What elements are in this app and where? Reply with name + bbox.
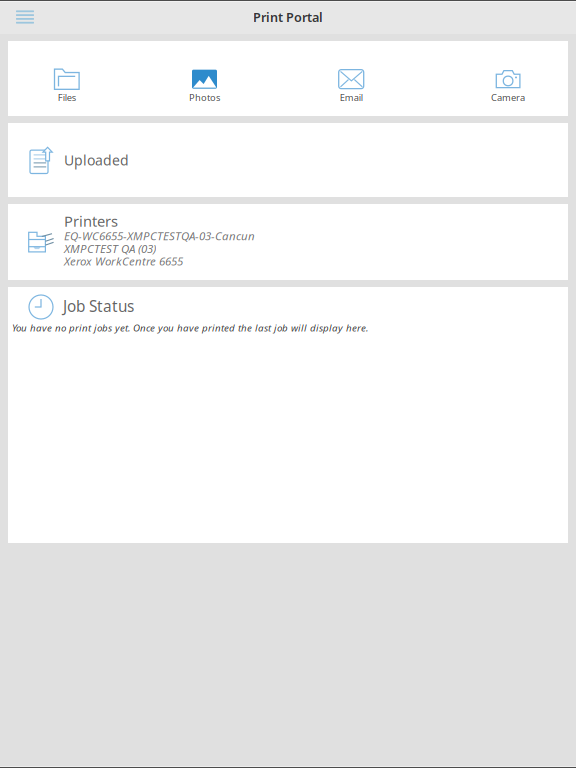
staticText: Print Portal bbox=[253, 8, 323, 26]
button[interactable]: Email bbox=[339, 37, 364, 120]
staticText: Email bbox=[340, 91, 363, 104]
staticText: Files bbox=[58, 91, 76, 104]
staticText: Photos bbox=[189, 91, 220, 104]
button[interactable]: Camera bbox=[491, 37, 525, 120]
button[interactable]: Menu bbox=[8, 1, 42, 33]
staticText: Printers bbox=[64, 211, 118, 231]
staticText: Job Status bbox=[63, 296, 134, 316]
staticText: You have no print jobs yet. Once you hav… bbox=[12, 321, 368, 334]
button[interactable]: Uploaded bbox=[8, 123, 568, 197]
button[interactable]: Photos bbox=[189, 37, 220, 120]
staticText: Uploaded bbox=[64, 150, 129, 170]
staticText: Xerox WorkCentre 6655 bbox=[64, 253, 183, 269]
button[interactable]: Files bbox=[54, 37, 80, 120]
staticText: XMPCTEST QA (03) bbox=[64, 241, 156, 256]
staticText: Camera bbox=[491, 91, 525, 104]
button[interactable]: Printers bbox=[8, 204, 568, 280]
staticText: EQ-WC6655-XMPCTESTQA-03-Cancun bbox=[64, 228, 255, 244]
